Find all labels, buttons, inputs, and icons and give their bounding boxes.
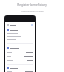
button[interactable] bbox=[7, 67, 33, 69]
button[interactable] bbox=[7, 55, 33, 58]
staticText: confirmation screen bbox=[21, 9, 44, 12]
button[interactable]: Back bbox=[7, 24, 33, 26]
staticText: Register beneficiary bbox=[17, 3, 47, 7]
button[interactable] bbox=[7, 47, 33, 49]
button[interactable] bbox=[7, 51, 33, 54]
button[interactable] bbox=[7, 29, 33, 31]
button[interactable] bbox=[7, 71, 33, 72]
button[interactable] bbox=[7, 59, 33, 62]
